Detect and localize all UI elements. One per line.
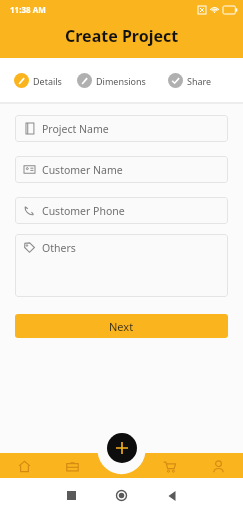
button[interactable]: Profile (194, 455, 243, 478)
staticText: Others (42, 241, 76, 255)
button[interactable]: Customer Phone (15, 197, 228, 224)
button[interactable]: Next (15, 314, 228, 338)
staticText: Next (109, 319, 134, 334)
staticText: Create Project (65, 25, 179, 47)
staticText: Dimensions (96, 75, 146, 87)
button[interactable]: Customer Name (15, 156, 228, 183)
staticText: Project Name (42, 122, 109, 136)
button[interactable]: Projects (48, 455, 96, 478)
staticText: Share (187, 75, 212, 87)
button[interactable]: Others (15, 234, 228, 297)
button[interactable]: Project Name (15, 115, 228, 142)
staticText: Customer Name (42, 163, 123, 177)
button[interactable]: Cart (145, 455, 194, 478)
button[interactable]: Add (107, 433, 137, 463)
staticText: 11:38 AM (10, 4, 46, 15)
staticText: Details (33, 75, 62, 87)
button[interactable]: Share (168, 73, 231, 88)
button[interactable]: Details (14, 73, 77, 88)
staticText: Customer Phone (42, 204, 125, 218)
button[interactable]: Dimensions (77, 73, 168, 88)
button[interactable]: Home (0, 455, 48, 478)
